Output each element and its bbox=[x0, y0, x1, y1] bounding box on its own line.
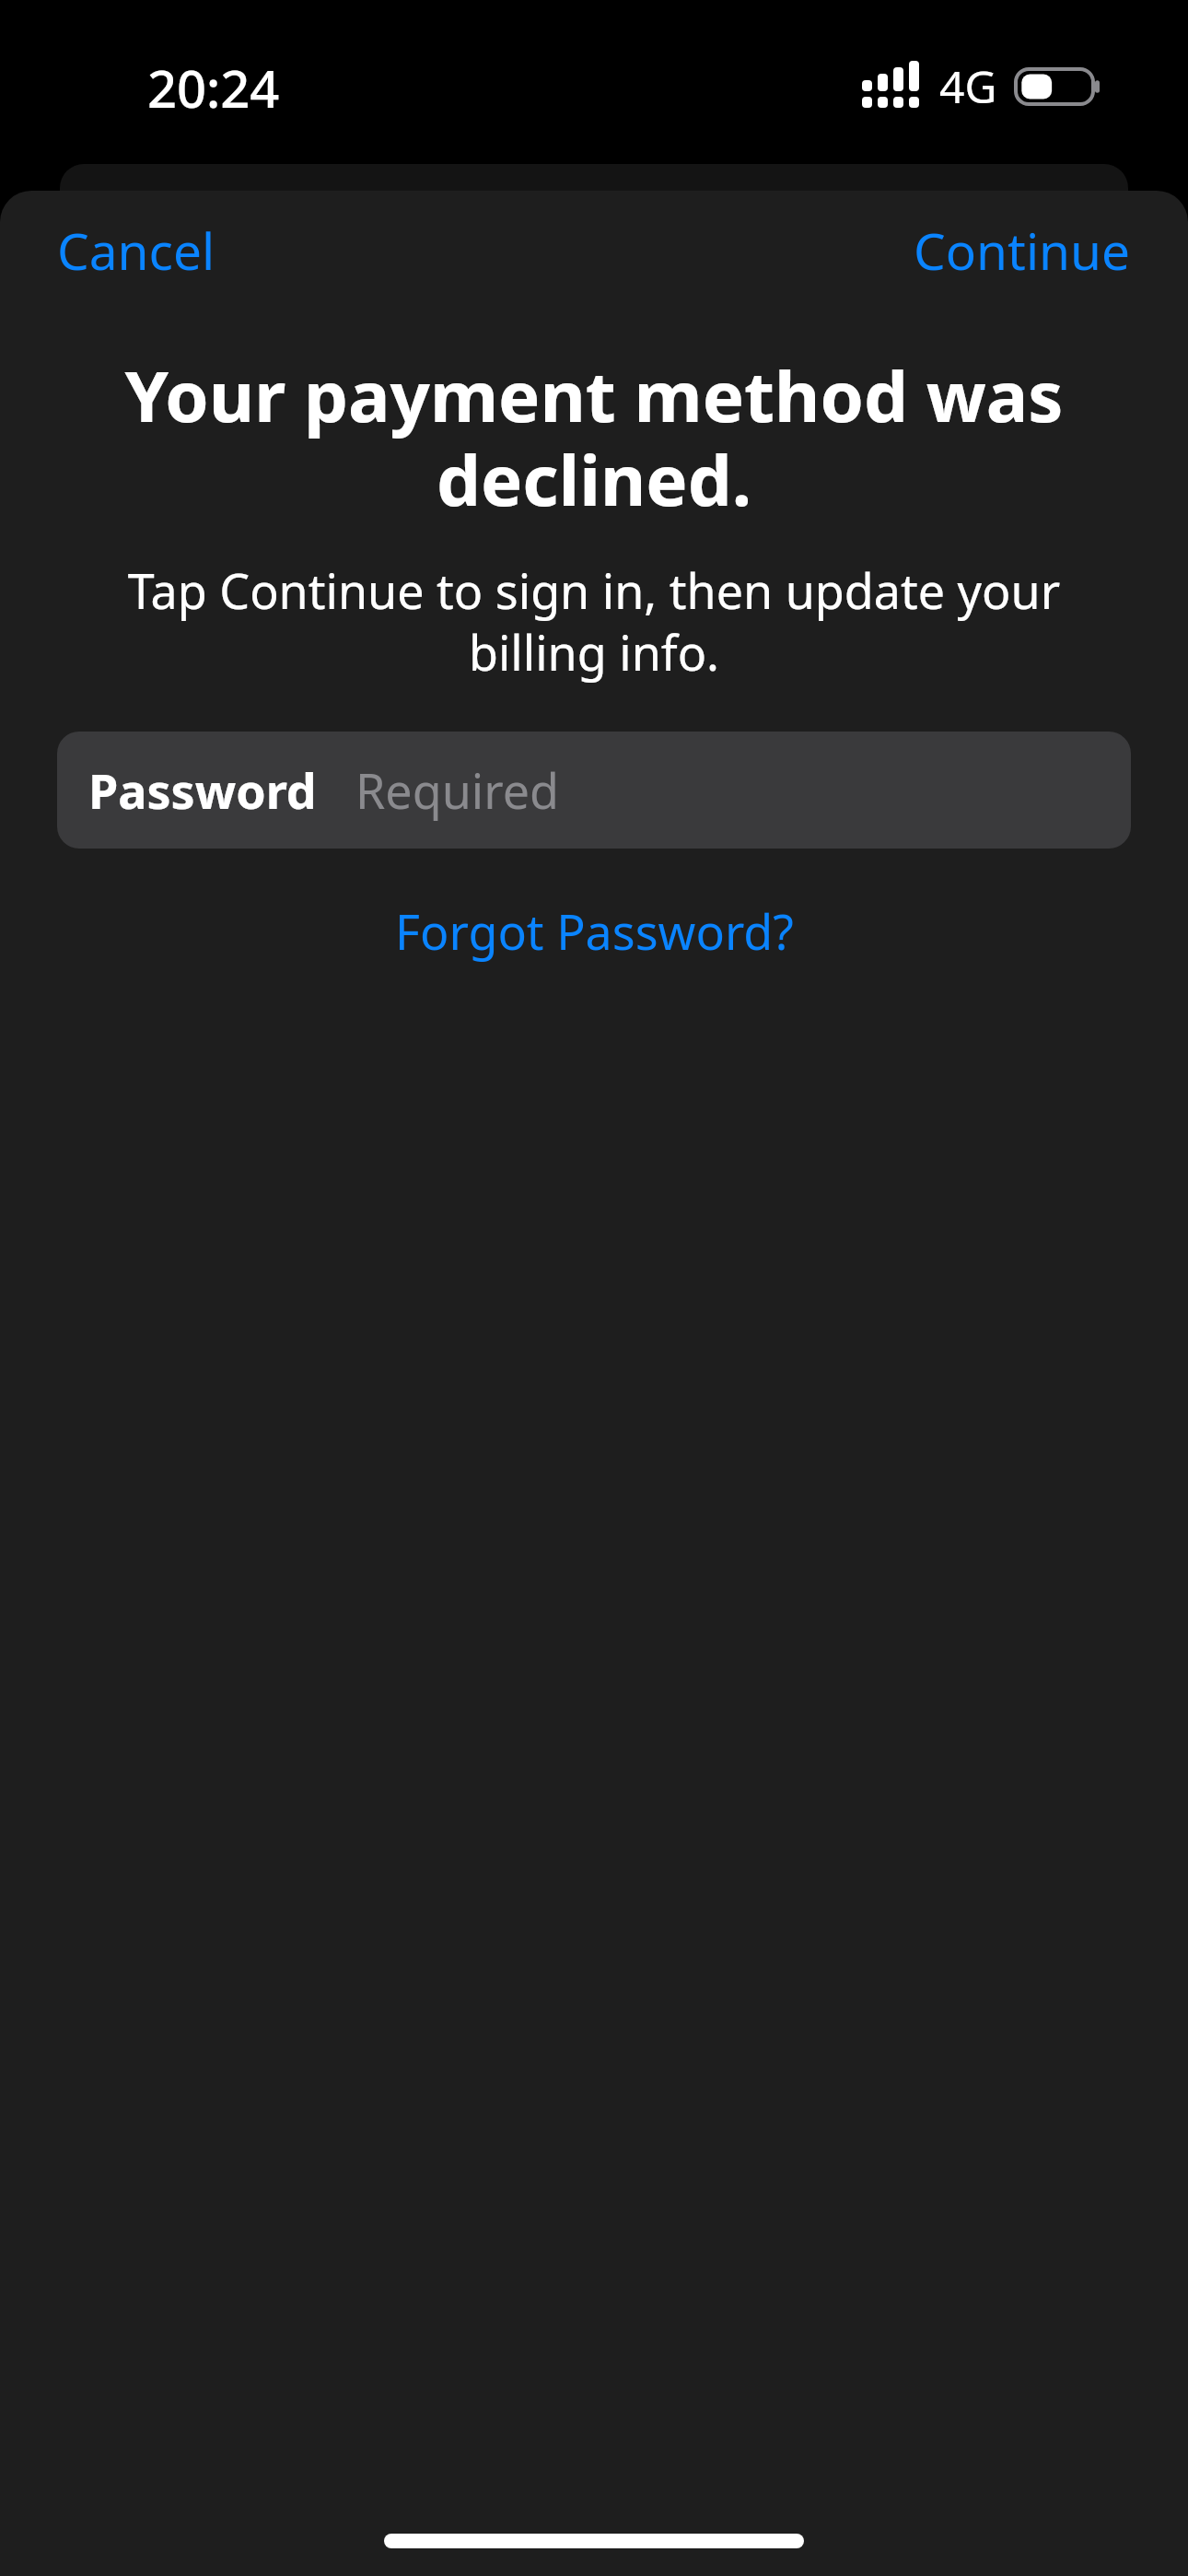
staticText: Continue bbox=[914, 216, 1131, 285]
staticText: Forgot Password? bbox=[395, 898, 794, 964]
staticText: Your payment method was declined. bbox=[103, 347, 1085, 526]
button[interactable]: Forgot Password? bbox=[377, 887, 812, 975]
button[interactable]: Continue bbox=[901, 206, 1144, 294]
staticText: 20:24 bbox=[147, 53, 280, 123]
staticText: Required bbox=[355, 757, 559, 823]
staticText: 4G bbox=[939, 56, 997, 116]
staticText: Tap Continue to sign in, then update you… bbox=[88, 557, 1100, 685]
button[interactable]: Cancel bbox=[44, 206, 228, 294]
staticText: Cancel bbox=[57, 216, 215, 285]
button[interactable]: Password bbox=[57, 732, 1131, 849]
staticText: Password bbox=[88, 757, 317, 823]
